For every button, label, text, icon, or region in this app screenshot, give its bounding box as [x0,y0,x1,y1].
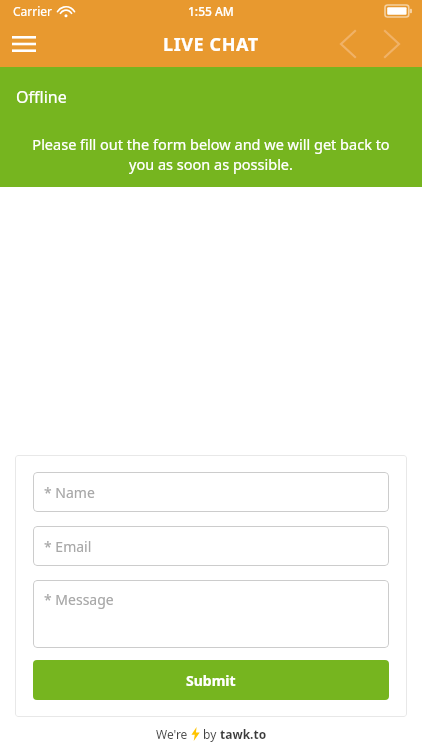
staticText: Please fill out the form below and we wi… [26,134,396,175]
staticText: tawk.to [220,726,267,742]
staticText: We're [156,726,191,742]
staticText: Submit [186,671,236,690]
button[interactable]: Forward [370,22,414,66]
staticText: 1:55 AM [188,3,234,19]
button[interactable]: Submit [33,660,389,700]
staticText: * Name [44,483,95,502]
button[interactable]: We're [156,726,267,742]
staticText: LIVE CHAT [163,32,259,57]
button[interactable]: * Message [33,580,389,648]
staticText: * Email [44,537,92,556]
staticText: Offline [16,86,67,108]
button[interactable]: * Name [33,472,389,512]
staticText: * Message [44,590,114,609]
button[interactable]: Back [326,22,370,66]
button[interactable]: Menu [0,21,48,67]
button[interactable]: * Email [33,526,389,566]
staticText: by [200,726,220,742]
staticText: Carrier [13,3,53,19]
